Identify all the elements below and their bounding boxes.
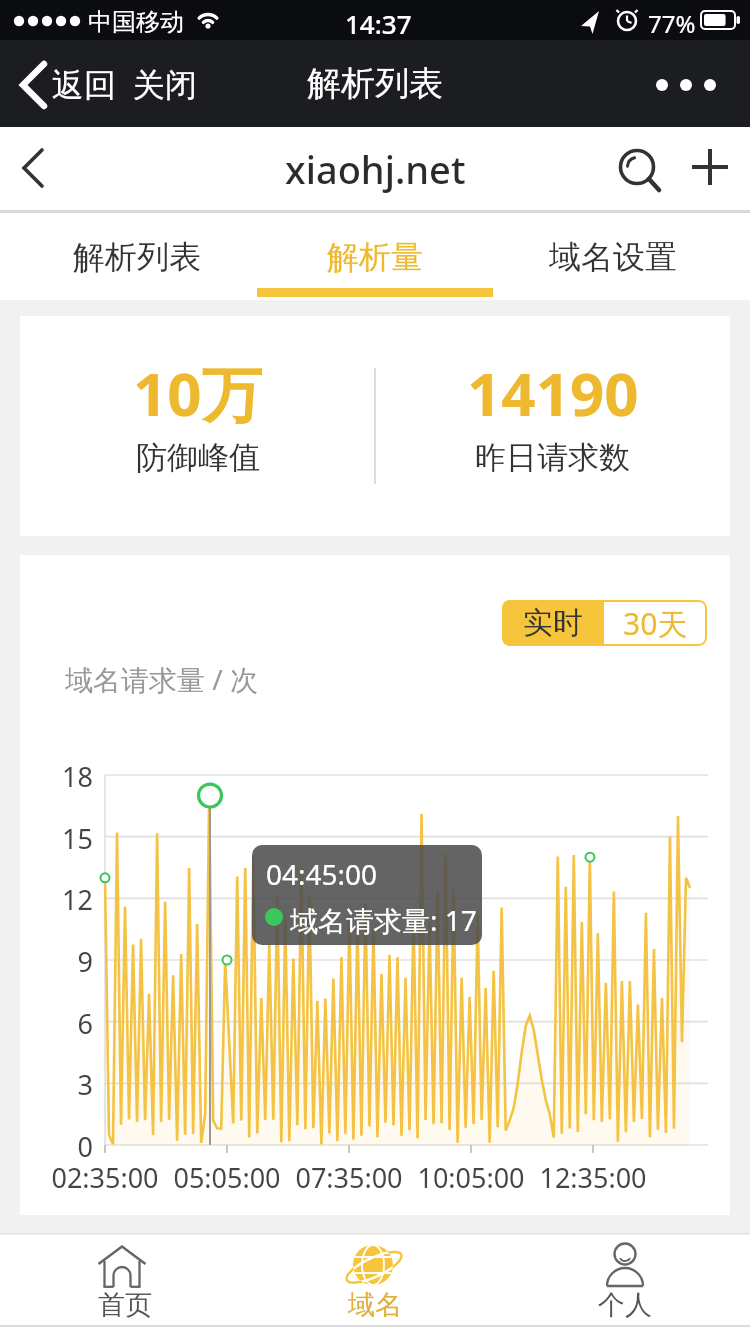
staticText: 14190	[467, 352, 639, 434]
staticText: 30天	[623, 603, 688, 644]
button[interactable]	[610, 127, 670, 211]
staticText: 05:05:00	[162, 1159, 292, 1196]
button[interactable]	[640, 40, 750, 127]
staticText: 昨日请求数	[475, 438, 630, 477]
button[interactable]: 30天	[604, 600, 707, 646]
button[interactable]: 域名设置	[494, 213, 732, 300]
button[interactable]	[0, 127, 70, 211]
button[interactable]	[680, 127, 750, 211]
button[interactable]: 实时	[502, 600, 604, 646]
staticText: 12:35:00	[528, 1159, 658, 1196]
staticText: 解析列表	[307, 62, 443, 105]
button[interactable]: 返回 关闭	[52, 40, 202, 127]
staticText: xiaohj.net	[285, 143, 466, 195]
button[interactable]: 首页	[0, 1233, 250, 1334]
staticText: 域名请求量: 17	[290, 901, 477, 939]
staticText: 07:35:00	[284, 1159, 414, 1196]
staticText: 04:45:00	[266, 855, 378, 893]
staticText: 18	[37, 758, 93, 795]
staticText: 域名	[348, 1288, 402, 1322]
staticText: 9	[37, 943, 93, 980]
staticText: 解析列表	[73, 237, 201, 277]
staticText: 15	[37, 820, 93, 857]
staticText: 防御峰值	[136, 438, 260, 477]
button[interactable]: 域名	[250, 1233, 500, 1334]
staticText: 12	[37, 881, 93, 918]
staticText: 0	[37, 1128, 93, 1165]
staticText: 个人	[598, 1288, 652, 1322]
staticText: 77%	[648, 7, 696, 40]
staticText: 实时	[523, 604, 583, 642]
staticText: 02:35:00	[40, 1159, 170, 1196]
button[interactable]: 解析列表	[18, 213, 256, 300]
staticText: 14:37	[345, 6, 412, 41]
staticText: 域名设置	[549, 237, 677, 277]
staticText: 10万	[133, 352, 262, 434]
staticText: 域名请求量 / 次	[65, 660, 258, 698]
staticText: 10:05:00	[406, 1159, 536, 1196]
staticText: 返回 关闭	[52, 62, 197, 106]
staticText: 6	[37, 1005, 93, 1042]
staticText: 3	[37, 1066, 93, 1103]
button[interactable]: 解析量	[256, 213, 494, 300]
staticText: 解析量	[327, 237, 423, 277]
staticText: 中国移动	[88, 7, 184, 37]
button[interactable]: 个人	[500, 1233, 750, 1334]
staticText: 首页	[98, 1288, 152, 1322]
